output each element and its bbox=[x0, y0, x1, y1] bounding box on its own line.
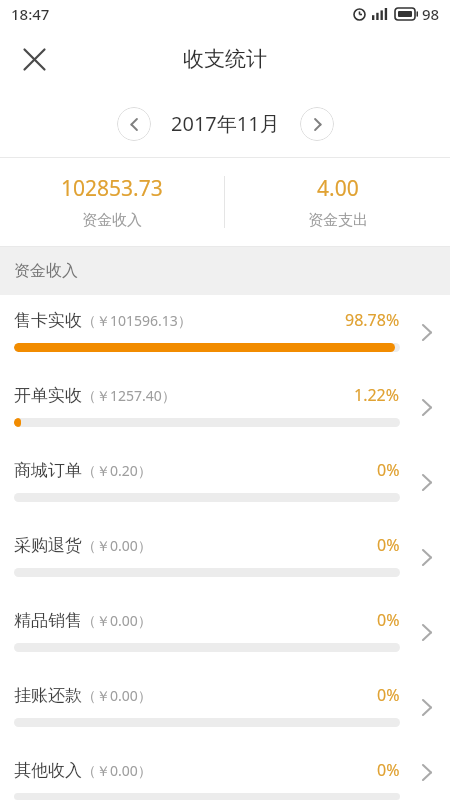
button[interactable]: 4.00 bbox=[225, 158, 450, 246]
staticText: （￥0.00） bbox=[82, 686, 152, 705]
staticText: 采购退货 bbox=[14, 535, 82, 556]
staticText: （￥0.00） bbox=[82, 536, 152, 555]
staticText: 售卡实收 bbox=[14, 310, 82, 331]
staticText: （￥1257.40） bbox=[82, 386, 176, 405]
button[interactable]: 开单实收 bbox=[0, 370, 450, 445]
staticText: （￥0.20） bbox=[82, 461, 152, 480]
button[interactable]: Close bbox=[14, 39, 54, 79]
button[interactable]: 采购退货 bbox=[0, 520, 450, 595]
staticText: 商城订单 bbox=[14, 460, 82, 481]
staticText: （￥101596.13） bbox=[82, 311, 192, 330]
staticText: 18:47 bbox=[11, 4, 50, 24]
staticText: 4.00 bbox=[317, 174, 359, 203]
staticText: 开单实收 bbox=[14, 385, 82, 406]
staticText: 0% bbox=[377, 759, 400, 781]
staticText: 精品销售 bbox=[14, 610, 82, 631]
staticText: 收支统计 bbox=[183, 46, 267, 72]
button[interactable]: 商城订单 bbox=[0, 445, 450, 520]
staticText: 0% bbox=[377, 684, 400, 706]
button[interactable]: 售卡实收 bbox=[0, 295, 450, 370]
button[interactable]: 102853.73 bbox=[0, 158, 224, 246]
staticText: 0% bbox=[377, 459, 400, 481]
staticText: 资金收入 bbox=[82, 211, 142, 230]
staticText: 102853.73 bbox=[61, 174, 163, 203]
staticText: 98.78% bbox=[345, 309, 400, 331]
staticText: 资金收入 bbox=[14, 261, 78, 281]
staticText: 98 bbox=[422, 4, 440, 24]
button[interactable]: Next month bbox=[300, 107, 334, 141]
staticText: （￥0.00） bbox=[82, 611, 152, 630]
staticText: 0% bbox=[377, 534, 400, 556]
staticText: 其他收入 bbox=[14, 760, 82, 781]
button[interactable]: 其他收入 bbox=[0, 745, 450, 800]
staticText: 0% bbox=[377, 609, 400, 631]
staticText: 2017年11月 bbox=[171, 110, 280, 137]
staticText: （￥0.00） bbox=[82, 761, 152, 780]
button[interactable]: Previous month bbox=[117, 107, 151, 141]
staticText: 资金支出 bbox=[308, 211, 368, 230]
staticText: 挂账还款 bbox=[14, 685, 82, 706]
staticText: 1.22% bbox=[354, 384, 400, 406]
button[interactable]: 精品销售 bbox=[0, 595, 450, 670]
button[interactable]: 挂账还款 bbox=[0, 670, 450, 745]
